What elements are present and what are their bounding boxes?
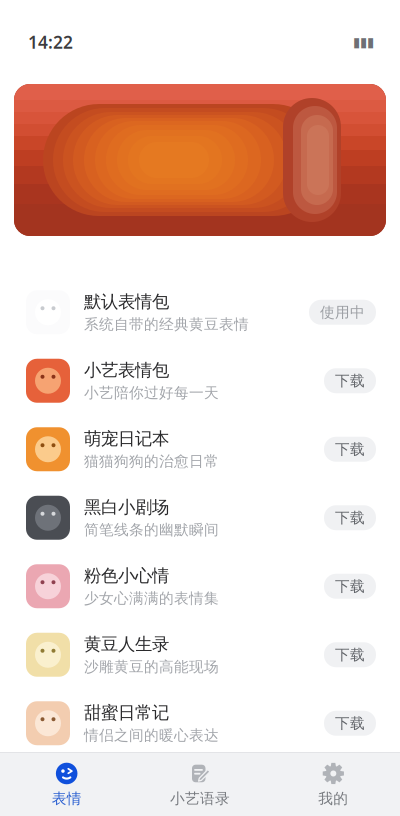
button[interactable]: 小艺语录	[133, 753, 267, 816]
staticText: 少女心满满的表情集	[84, 589, 219, 607]
button[interactable]: 萌宠日记本	[0, 415, 400, 483]
staticText: 下载	[335, 577, 365, 595]
staticText: 下载	[335, 509, 365, 527]
button[interactable]: 小艺表情包	[0, 346, 400, 415]
button[interactable]: 粉色小心情	[0, 552, 400, 620]
staticText: ▮▮▮	[353, 34, 374, 49]
button[interactable]: 默认表情包	[0, 278, 400, 346]
staticText: 沙雕黄豆的高能现场	[84, 658, 219, 676]
staticText: 14:22	[28, 30, 73, 53]
staticText: 萌宠日记本	[84, 428, 169, 449]
staticText: 下载	[335, 646, 365, 664]
staticText: 粉色小心情	[84, 565, 169, 586]
staticText: 下载	[335, 440, 365, 458]
staticText: 小艺陪你过好每一天	[84, 384, 219, 402]
staticText: 简笔线条的幽默瞬间	[84, 521, 219, 539]
staticText: 下载	[335, 714, 365, 732]
staticText: 使用中	[320, 303, 365, 321]
staticText: 表情	[52, 789, 82, 807]
staticText: 情侣之间的暖心表达	[84, 726, 219, 744]
staticText: 系统自带的经典黄豆表情	[84, 315, 249, 333]
staticText: 我的	[318, 789, 348, 807]
staticText: 默认表情包	[84, 291, 169, 312]
staticText: 甜蜜日常记	[84, 702, 169, 723]
staticText: 小艺语录	[170, 789, 230, 807]
button[interactable]: 表情	[0, 753, 133, 816]
staticText: 黑白小剧场	[84, 497, 169, 518]
staticText: 黄豆人生录	[84, 634, 169, 655]
button[interactable]: 我的	[267, 753, 400, 816]
staticText: 下载	[335, 372, 365, 390]
button[interactable]: 甜蜜日常记	[0, 689, 400, 757]
button[interactable]: 黑白小剧场	[0, 483, 400, 552]
staticText: 小艺表情包	[84, 360, 169, 381]
staticText: 猫猫狗狗的治愈日常	[84, 452, 219, 470]
button[interactable]: 黄豆人生录	[0, 620, 400, 689]
